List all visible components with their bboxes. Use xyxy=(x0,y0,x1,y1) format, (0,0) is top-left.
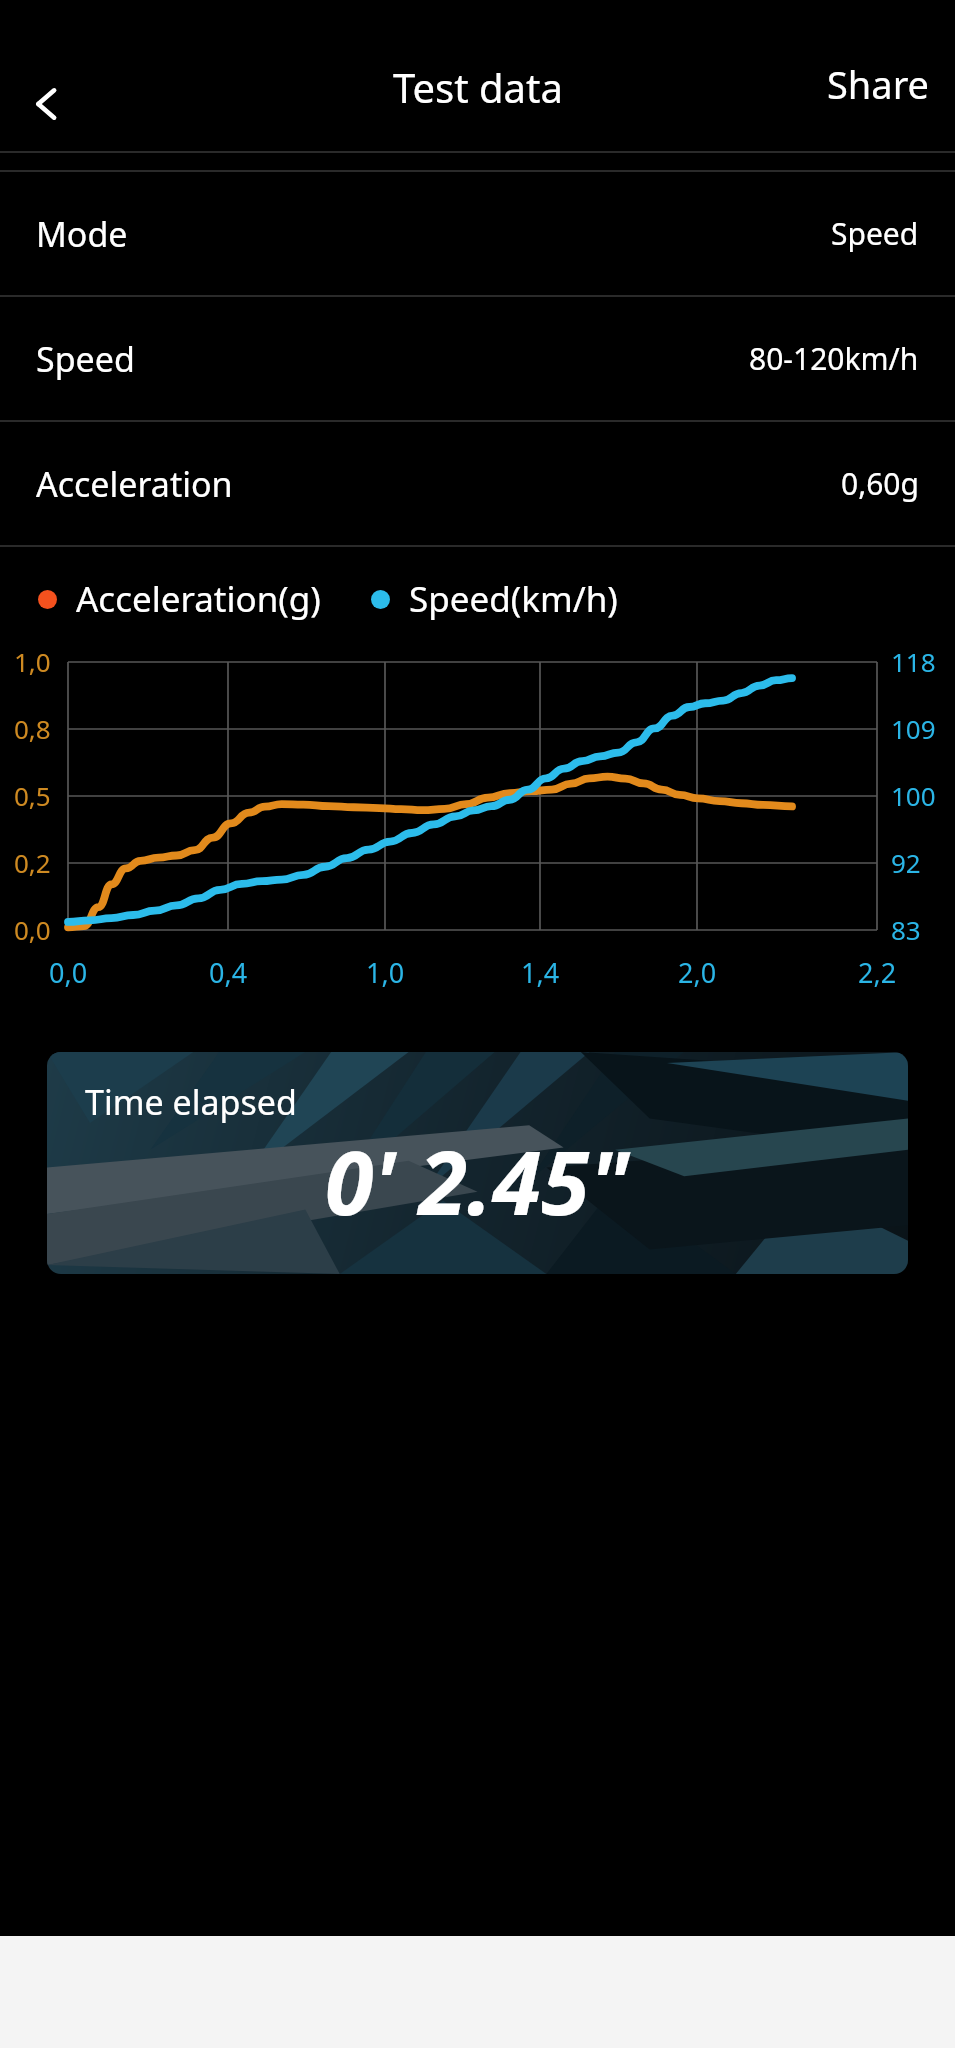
staticText: 1,0 xyxy=(14,644,51,679)
staticText: 109 xyxy=(891,711,936,746)
staticText: 83 xyxy=(891,912,921,947)
staticText: Acceleration xyxy=(36,461,841,507)
button[interactable]: Time elapsed xyxy=(47,1052,908,1274)
staticText: 0,0 xyxy=(49,954,88,991)
staticText: 2,2 xyxy=(858,954,897,991)
button[interactable]: Mode xyxy=(0,172,955,297)
button[interactable]: Acceleration(g) xyxy=(38,575,955,623)
staticText: 0,5 xyxy=(14,778,51,813)
staticText: 92 xyxy=(891,845,921,880)
staticText: Acceleration(g) xyxy=(76,575,321,623)
staticText: 80-120km/h xyxy=(749,338,919,379)
staticText: 100 xyxy=(891,778,936,813)
staticText: Mode xyxy=(36,211,831,257)
staticText: Share xyxy=(827,58,930,110)
staticText: 1,0 xyxy=(366,954,405,991)
staticText: 118 xyxy=(891,644,936,679)
staticText: 2,0 xyxy=(678,954,717,991)
staticText: 0,60g xyxy=(841,463,919,504)
staticText: Time elapsed xyxy=(85,1079,297,1125)
staticText: 0,2 xyxy=(14,845,51,880)
button[interactable]: Speed xyxy=(0,297,955,422)
staticText: 1,4 xyxy=(521,954,560,991)
staticText: Speed xyxy=(831,213,919,254)
staticText: 0,4 xyxy=(209,954,248,991)
staticText: 0,8 xyxy=(14,711,51,746)
staticText: Test data xyxy=(393,60,563,114)
button[interactable]: Acceleration xyxy=(0,422,955,547)
staticText: Speed(km/h) xyxy=(409,575,618,623)
button[interactable]: Back xyxy=(13,69,83,139)
staticText: 0' 2.45" xyxy=(325,1121,630,1241)
button[interactable]: Share xyxy=(818,50,939,118)
staticText: 0,0 xyxy=(14,912,51,947)
staticText: Speed xyxy=(36,336,749,382)
